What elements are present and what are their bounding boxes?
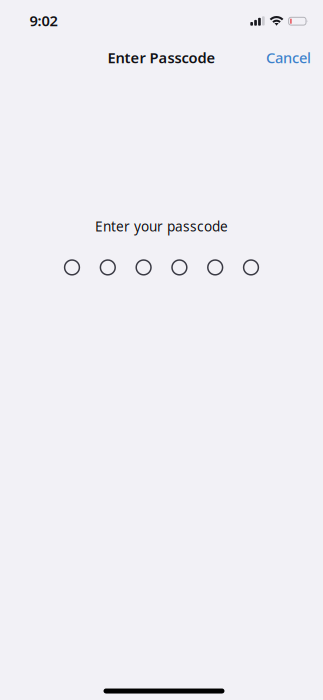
staticText: Cancel [266,48,311,67]
staticText: Enter your passcode [95,217,228,235]
staticText: Enter Passcode [107,48,215,67]
staticText: 9:02 [29,11,57,30]
button[interactable]: Cancel [259,41,318,74]
button[interactable]: Passcode field, 6 digits [55,254,268,281]
